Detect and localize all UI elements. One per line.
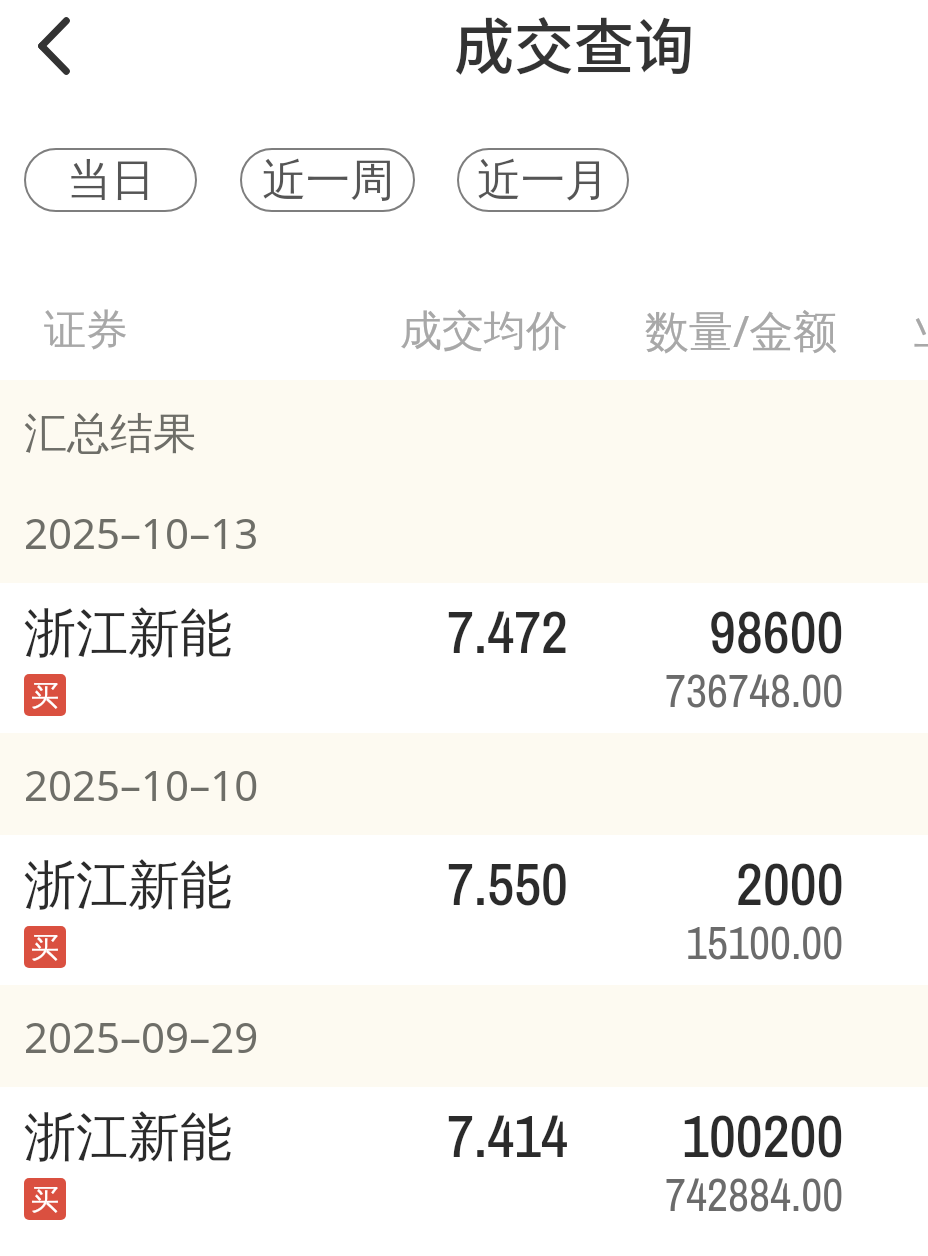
staticText: 汇总结果 bbox=[24, 407, 196, 461]
staticText: 7.550 bbox=[446, 844, 568, 923]
staticText: 浙江新能 bbox=[24, 601, 232, 667]
staticText: 浙江新能 bbox=[24, 853, 232, 919]
staticText: 证券 bbox=[44, 304, 128, 357]
staticText: 736748.00 bbox=[665, 659, 844, 721]
staticText: 浙江新能 bbox=[24, 1105, 232, 1171]
staticText: 7.414 bbox=[446, 1096, 568, 1175]
staticText: 2025–09–29 bbox=[24, 1008, 259, 1065]
staticText: 100200 bbox=[682, 1096, 844, 1175]
staticText: 成交均价 bbox=[400, 305, 568, 358]
staticText: 742884.00 bbox=[665, 1163, 844, 1225]
button[interactable]: 浙江新能 bbox=[0, 835, 928, 985]
staticText: 近一月 bbox=[477, 153, 609, 208]
button[interactable]: 浙江新能 bbox=[0, 1087, 928, 1237]
staticText: 2025–10–13 bbox=[24, 504, 259, 561]
button[interactable]: 当日 bbox=[24, 148, 197, 212]
staticText: 成交查询 bbox=[454, 0, 694, 86]
button[interactable]: 2025–10–10 bbox=[0, 733, 928, 835]
staticText: 2000 bbox=[736, 844, 844, 923]
staticText: 买 bbox=[31, 1182, 59, 1217]
button[interactable]: 近一月 bbox=[457, 148, 629, 212]
staticText: 近一周 bbox=[262, 153, 394, 208]
button[interactable]: 近一周 bbox=[240, 148, 415, 212]
button[interactable]: Back bbox=[18, 10, 90, 82]
staticText: 98600 bbox=[709, 592, 844, 671]
button[interactable]: 浙江新能 bbox=[0, 583, 928, 733]
staticText: 15100.00 bbox=[686, 911, 844, 973]
button[interactable]: 2025–09–29 bbox=[0, 985, 928, 1087]
staticText: 数量/金额 bbox=[645, 300, 838, 360]
staticText: 当日 bbox=[67, 153, 155, 208]
staticText: 业 bbox=[914, 304, 928, 357]
staticText: 买 bbox=[31, 678, 59, 713]
staticText: 买 bbox=[31, 930, 59, 965]
staticText: 2025–10–10 bbox=[24, 756, 259, 813]
staticText: 7.472 bbox=[446, 592, 568, 671]
